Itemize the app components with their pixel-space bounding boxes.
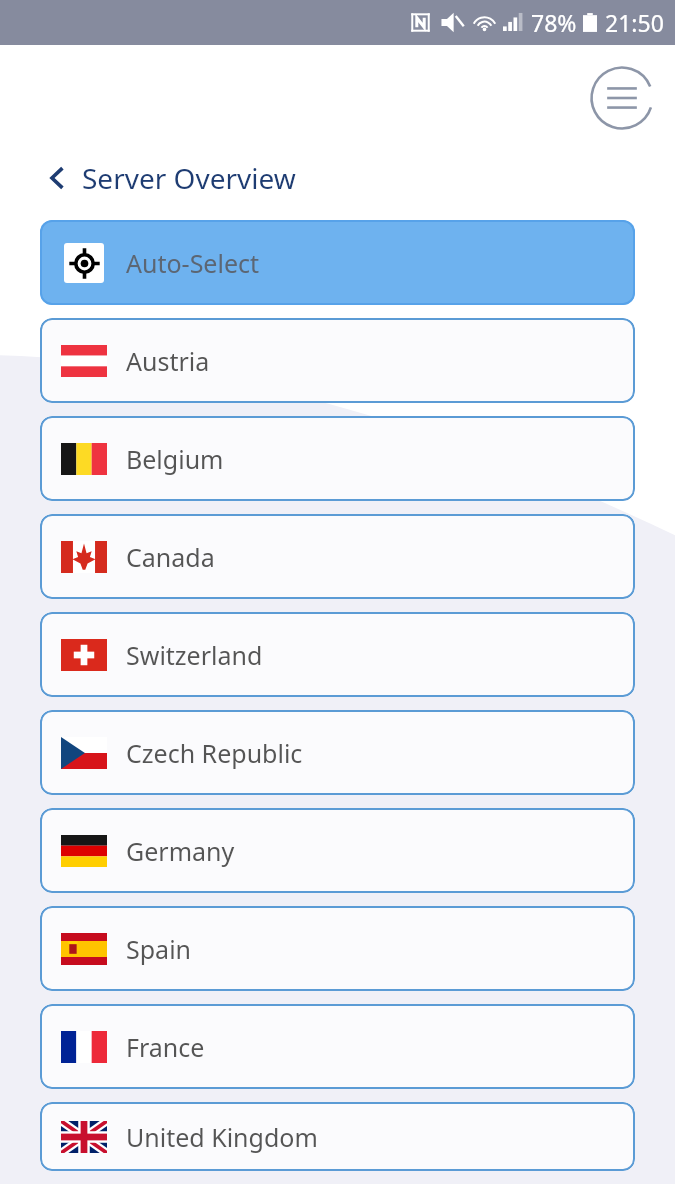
- staticText: United Kingdom: [126, 1120, 318, 1154]
- staticText: 78%: [531, 7, 577, 38]
- staticText: Belgium: [126, 442, 224, 476]
- staticText: Germany: [126, 834, 235, 868]
- button[interactable]: Server Overview: [48, 150, 296, 206]
- button[interactable]: Canada: [40, 514, 635, 599]
- button[interactable]: Czech Republic: [40, 710, 635, 795]
- staticText: Spain: [126, 932, 192, 966]
- button[interactable]: Spain: [40, 906, 635, 991]
- staticText: Auto-Select: [126, 246, 260, 280]
- button[interactable]: Belgium: [40, 416, 635, 501]
- button[interactable]: Germany: [40, 808, 635, 893]
- button[interactable]: France: [40, 1004, 635, 1089]
- button[interactable]: Switzerland: [40, 612, 635, 697]
- button[interactable]: Austria: [40, 318, 635, 403]
- button[interactable]: Auto-Select: [40, 220, 635, 305]
- staticText: France: [126, 1030, 205, 1064]
- button[interactable]: United Kingdom: [40, 1102, 635, 1171]
- staticText: 21:50: [605, 7, 664, 38]
- staticText: Austria: [126, 344, 210, 378]
- staticText: Czech Republic: [126, 736, 303, 770]
- staticText: Canada: [126, 540, 215, 574]
- staticText: Switzerland: [126, 638, 263, 672]
- button[interactable]: Menu: [589, 65, 655, 131]
- staticText: Server Overview: [82, 159, 296, 197]
